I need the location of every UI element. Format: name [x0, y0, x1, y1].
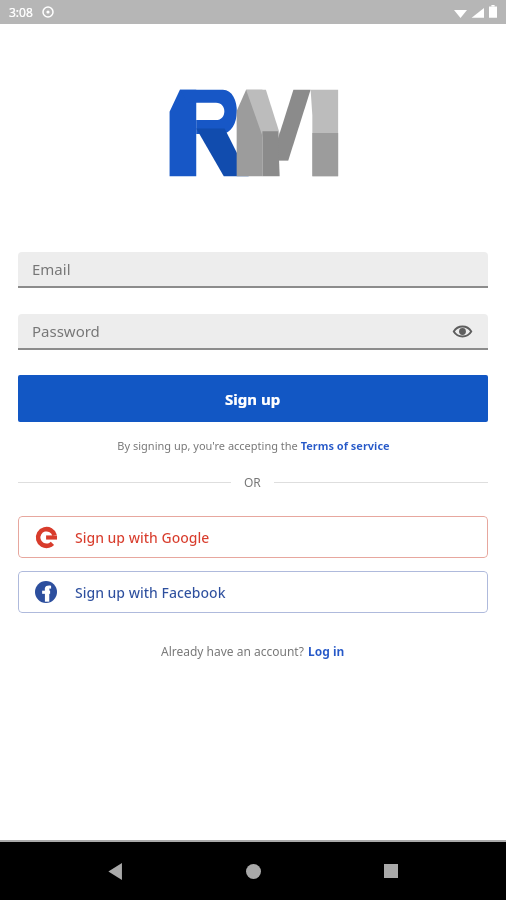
button[interactable]: Back: [92, 848, 138, 894]
staticText: 3:08: [9, 4, 33, 20]
button[interactable]: Sign up: [18, 375, 488, 422]
staticText: Already have an account?: [161, 643, 308, 659]
staticText: OR: [244, 474, 261, 490]
button[interactable]: Recent apps: [368, 848, 414, 894]
staticText: Log in: [308, 643, 345, 659]
staticText: Sign up with Google: [75, 528, 210, 547]
staticText: Sign up with Facebook: [75, 583, 226, 602]
staticText: Email: [32, 259, 71, 279]
button[interactable]: Show password: [450, 319, 474, 343]
button[interactable]: Password: [18, 314, 488, 348]
staticText: Sign up: [225, 389, 281, 409]
staticText: Password: [32, 321, 100, 341]
button[interactable]: Email: [18, 252, 488, 286]
button[interactable]: Sign up with Google: [18, 516, 488, 558]
button[interactable]: Already have an account?: [161, 643, 345, 659]
button[interactable]: Sign up with Facebook: [18, 571, 488, 613]
staticText: By signing up, you're accepting the Term…: [117, 438, 390, 453]
button[interactable]: Home: [230, 848, 276, 894]
